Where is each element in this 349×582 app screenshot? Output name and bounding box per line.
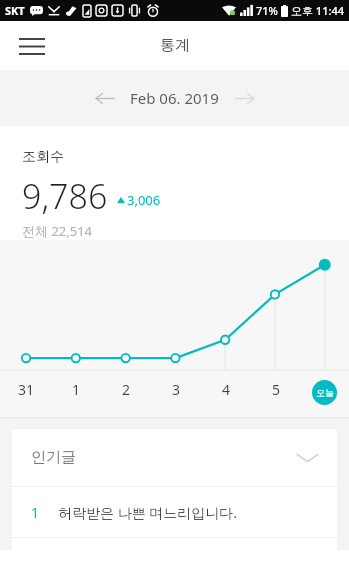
staticText: 허락받은 나쁜 며느리입니다.: [58, 503, 238, 522]
staticText: 조회수: [22, 148, 64, 166]
staticText: 3,006: [127, 191, 161, 209]
staticText: 2: [122, 380, 131, 399]
button[interactable]: Menu: [8, 22, 56, 70]
staticText: 인기글: [31, 448, 76, 467]
button[interactable]: 인기글: [12, 429, 337, 486]
button[interactable]: 1: [12, 487, 337, 537]
staticText: 오후 11:44: [291, 3, 345, 18]
staticText: 31: [18, 380, 35, 399]
button[interactable]: 오늘: [312, 380, 337, 405]
staticText: 1: [31, 503, 40, 522]
staticText: 4: [222, 380, 231, 399]
staticText: SKT: [5, 3, 25, 18]
staticText: 오늘: [316, 387, 334, 398]
staticText: 9,786: [22, 173, 108, 219]
staticText: 3: [172, 380, 181, 399]
staticText: Feb 06. 2019: [130, 88, 219, 108]
staticText: 통계: [160, 36, 190, 55]
button[interactable]: Previous day: [86, 79, 124, 117]
staticText: 71%: [256, 3, 278, 18]
staticText: 전체 22,514: [22, 222, 93, 240]
button[interactable]: Next day: [225, 79, 263, 117]
staticText: 1: [72, 380, 81, 399]
staticText: 5: [272, 380, 281, 399]
